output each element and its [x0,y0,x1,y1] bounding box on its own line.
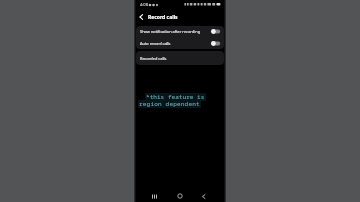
button[interactable] [174,191,185,201]
button[interactable] [148,191,160,201]
button[interactable]: Auto record calls [136,37,224,49]
button[interactable]: Record calls [134,12,226,22]
button[interactable] [139,14,144,20]
button[interactable]: Show notification after recording [136,26,224,37]
button[interactable] [211,41,221,46]
button[interactable] [199,191,209,201]
staticText: Auto record calls [140,41,211,46]
staticText: region dependent [139,100,200,108]
staticText: *this feature is [146,93,205,101]
staticText: Show notification after recording [140,29,211,34]
staticText: 4:08 [140,2,148,7]
staticText: Record calls [148,14,178,21]
staticText: Recorded calls [140,56,167,61]
button[interactable] [211,29,221,34]
button[interactable]: Recorded calls [136,51,224,65]
